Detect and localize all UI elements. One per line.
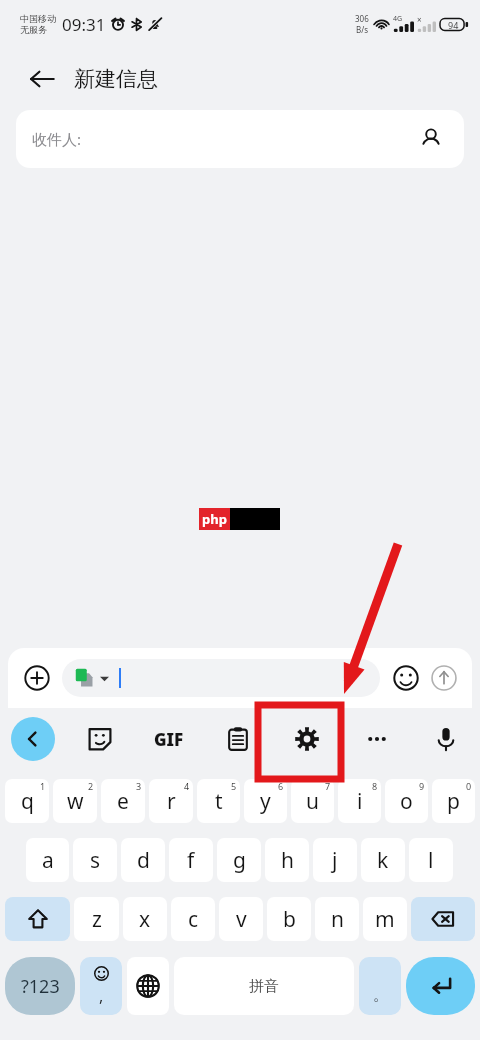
button[interactable]: GIF <box>134 708 203 770</box>
staticText: 2 <box>88 780 94 792</box>
button[interactable]: Clipboard <box>203 708 272 770</box>
button[interactable]: Send <box>428 662 460 694</box>
staticText: d <box>137 846 150 875</box>
staticText: 无服务 <box>20 24 47 35</box>
staticText: u <box>306 787 319 816</box>
staticText: 1 <box>40 780 46 792</box>
button[interactable]: v <box>219 897 263 941</box>
button[interactable]: Add attachment <box>20 661 54 695</box>
button[interactable]: w <box>53 779 97 823</box>
staticText: v <box>236 905 247 934</box>
staticText: t <box>215 787 223 816</box>
button[interactable]: d <box>121 838 165 882</box>
staticText: n <box>331 905 344 934</box>
staticText: y <box>260 787 271 816</box>
button[interactable]: Shift <box>5 897 70 941</box>
staticText: k <box>377 846 389 875</box>
staticText: l <box>428 846 434 875</box>
staticText: 6 <box>278 780 284 792</box>
staticText: r <box>167 787 176 816</box>
button[interactable]: 拼音 <box>174 957 354 1015</box>
staticText: j <box>332 846 338 875</box>
button[interactable]: k <box>361 838 405 882</box>
button[interactable]: Emoji and comma <box>80 957 122 1015</box>
button[interactable]: 收件人: <box>16 110 464 168</box>
staticText: 拼音 <box>249 977 279 996</box>
button[interactable]: q <box>5 779 49 823</box>
staticText: 4G <box>393 14 403 24</box>
staticText: ?123 <box>21 974 60 999</box>
staticText: m <box>375 905 395 934</box>
staticText: 新建信息 <box>74 66 158 92</box>
button[interactable]: a <box>26 838 69 882</box>
staticText: p <box>447 787 460 816</box>
button[interactable]: s <box>73 838 117 882</box>
button[interactable]: m <box>363 897 407 941</box>
button[interactable]: n <box>315 897 359 941</box>
staticText: w <box>67 787 84 816</box>
staticText: 5 <box>231 780 237 792</box>
button[interactable]: c <box>171 897 215 941</box>
staticText: f <box>187 846 195 875</box>
button[interactable]: Stickers <box>66 708 134 770</box>
staticText: 09:31 <box>62 13 106 36</box>
staticText: a <box>42 846 54 875</box>
staticText: e <box>117 787 129 816</box>
button[interactable]: x <box>123 897 167 941</box>
button[interactable]: y <box>244 779 287 823</box>
button[interactable]: l <box>409 838 453 882</box>
button[interactable]: Backspace <box>411 897 475 941</box>
button[interactable]: Back <box>22 59 62 99</box>
staticText: 8 <box>372 780 378 792</box>
button[interactable]: e <box>101 779 145 823</box>
staticText: 中国移动 <box>20 13 56 24</box>
button[interactable]: Pick contact <box>416 124 446 154</box>
staticText: 94 <box>448 19 459 31</box>
button[interactable]: j <box>313 838 357 882</box>
staticText: b <box>283 905 296 934</box>
staticText: q <box>21 787 34 816</box>
staticText: 3 <box>136 780 142 792</box>
staticText: s <box>90 846 101 875</box>
button[interactable]: Emoji <box>390 662 422 694</box>
staticText: c <box>188 905 199 934</box>
button[interactable]: t <box>197 779 240 823</box>
button[interactable]: r <box>149 779 193 823</box>
button[interactable]: g <box>217 838 261 882</box>
staticText: 收件人: <box>32 129 82 149</box>
staticText: 0 <box>466 780 472 792</box>
button[interactable]: ?123 <box>5 957 75 1015</box>
button[interactable]: z <box>74 897 119 941</box>
staticText: g <box>233 846 246 875</box>
button[interactable]: 。 <box>359 957 401 1015</box>
staticText: 7 <box>325 780 331 792</box>
button[interactable]: Settings <box>272 708 341 770</box>
staticText: GIF <box>154 728 184 751</box>
staticText: php <box>202 510 227 528</box>
button[interactable] <box>62 659 380 697</box>
staticText: B/s <box>356 24 369 35</box>
button[interactable]: o <box>385 779 428 823</box>
button[interactable]: p <box>432 779 475 823</box>
button[interactable]: Collapse <box>11 717 55 761</box>
staticText: h <box>281 846 294 875</box>
button[interactable]: Voice input <box>411 708 480 770</box>
button[interactable]: More <box>342 708 411 770</box>
staticText: o <box>400 787 413 816</box>
staticText: , <box>99 985 104 1007</box>
button[interactable]: i <box>338 779 381 823</box>
staticText: 。 <box>373 986 388 1005</box>
staticText: x <box>139 905 151 934</box>
button[interactable]: b <box>267 897 311 941</box>
staticText: × <box>417 14 422 25</box>
button[interactable]: h <box>265 838 309 882</box>
staticText: i <box>357 787 363 816</box>
staticText: 306 <box>355 13 369 24</box>
button[interactable]: Change language <box>127 957 169 1015</box>
button[interactable]: u <box>291 779 334 823</box>
staticText: 9 <box>419 780 425 792</box>
staticText: z <box>92 905 102 934</box>
button[interactable]: Enter <box>406 957 475 1015</box>
staticText: 4 <box>184 780 190 792</box>
button[interactable]: f <box>169 838 213 882</box>
